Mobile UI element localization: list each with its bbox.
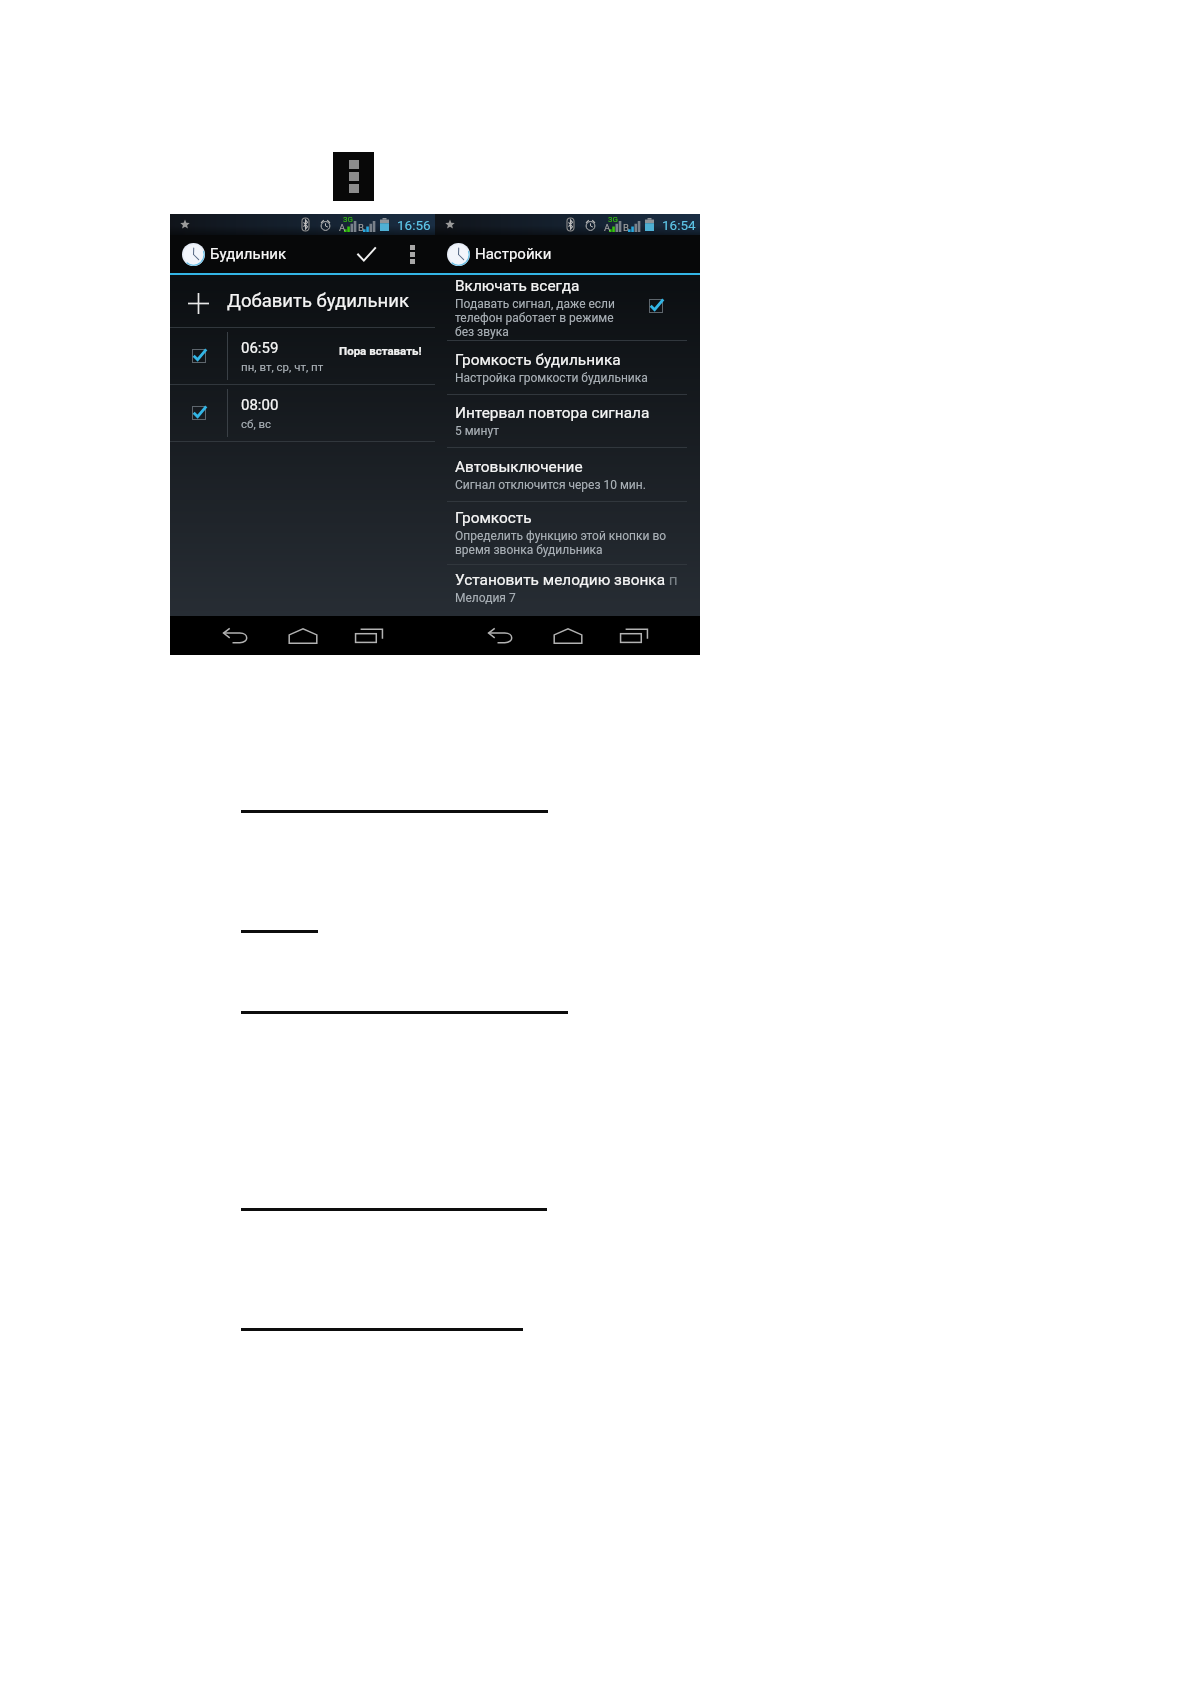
button[interactable]: Интервал повтора сигнала [435,395,700,447]
staticText: Сигнал отключится через 10 мин. [455,478,646,492]
button[interactable]: Done [348,235,385,273]
staticText: 3G [608,215,618,224]
staticText: Интервал повтора сигнала [455,404,650,422]
staticText: сб, вс [241,417,272,430]
staticText: Включать всегда [455,277,580,295]
staticText: Пора вставать! [339,344,422,357]
button[interactable]: Громкость будильника [435,341,700,394]
staticText: 5 минут [455,424,499,438]
button[interactable]: Always sound alarm [649,299,663,313]
staticText: Добавить будильник [227,290,409,312]
staticText: Громкость [455,509,532,527]
button[interactable]: Recent apps [601,616,667,655]
staticText: Будильник [210,245,287,263]
staticText: 3G [343,215,353,224]
staticText: Определить функцию этой кнопки во время … [455,529,694,557]
staticText: 16:54 [662,217,696,233]
staticText: Подавать сигнал, даже если телефон работ… [455,297,619,339]
button[interactable]: Включать всегда [435,275,700,340]
button[interactable]: Back [468,616,535,655]
button[interactable]: Enable alarm [170,328,435,384]
button[interactable]: More options [333,152,374,201]
button[interactable]: Enable alarm [192,349,206,363]
button[interactable]: Установить мелодию звонка п [435,565,700,611]
button[interactable]: More options [397,235,427,273]
staticText: Громкость будильника [455,351,621,369]
staticText: Установить мелодию звонка п [455,571,678,589]
button[interactable]: Home [535,616,601,655]
button[interactable]: Back [203,616,270,655]
button[interactable]: Автовыключение [435,448,700,501]
button[interactable]: Enable alarm [192,406,206,420]
staticText: Мелодия 7 [455,591,516,605]
staticText: Автовыключение [455,458,583,476]
staticText: 06:59 [241,339,279,357]
staticText: B [358,222,364,233]
staticText: Настройки [475,245,552,263]
button[interactable]: Громкость [435,502,700,564]
staticText: пн, вт, ср, чт, пт [241,360,324,373]
button[interactable]: Home [270,616,336,655]
button[interactable]: Enable alarm [170,385,435,441]
staticText: Настройка громкости будильника [455,371,648,385]
button[interactable]: Добавить будильник [170,275,435,327]
staticText: B [623,222,629,233]
staticText: 16:56 [397,217,431,233]
button[interactable]: Recent apps [336,616,402,655]
staticText: 08:00 [241,396,279,414]
staticText: A [604,222,611,233]
staticText: A [339,222,346,233]
